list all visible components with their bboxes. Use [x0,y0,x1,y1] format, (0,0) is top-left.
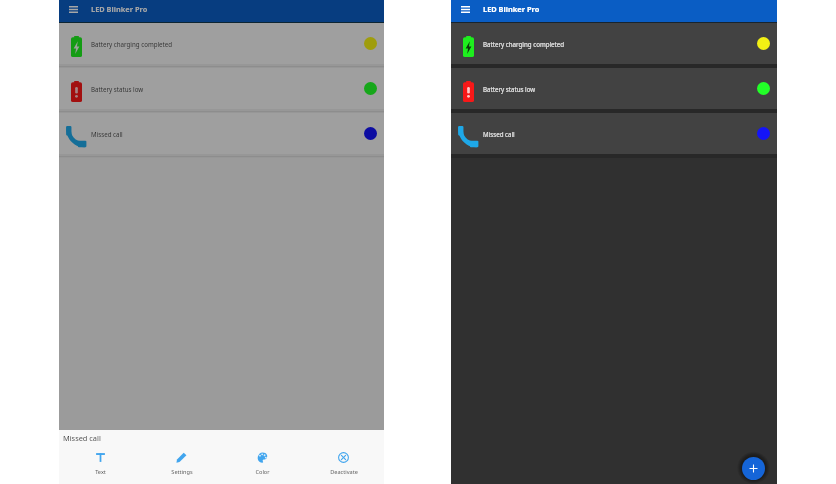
button[interactable]: Color [222,450,303,484]
button[interactable]: Add [742,457,765,480]
staticText: LED Blinker Pro [483,4,540,14]
staticText: Missed call [91,130,123,138]
button[interactable]: Missed call [451,113,777,154]
button[interactable]: Battery status low [59,68,384,109]
button[interactable]: Open navigation menu [457,1,473,17]
button[interactable]: Battery status low [451,68,777,109]
staticText: Missed call [483,130,515,138]
button[interactable]: Open navigation menu [65,1,81,17]
button[interactable]: Deactivate [303,450,384,484]
button[interactable]: Battery charging completed [451,23,777,64]
staticText: Deactivate [330,468,358,476]
staticText: Battery charging completed [483,40,565,48]
staticText: Settings [171,468,193,476]
button[interactable]: Text [59,450,141,484]
staticText: Color [255,468,270,476]
button[interactable]: Settings [141,450,222,484]
staticText: Battery status low [483,85,536,93]
button[interactable]: Missed call [59,113,384,154]
button[interactable]: Battery charging completed [59,23,384,64]
staticText: Missed call [63,433,101,443]
staticText: Battery charging completed [91,40,173,48]
staticText: Battery status low [91,85,144,93]
staticText: Text [95,468,106,476]
staticText: LED Blinker Pro [91,4,148,14]
